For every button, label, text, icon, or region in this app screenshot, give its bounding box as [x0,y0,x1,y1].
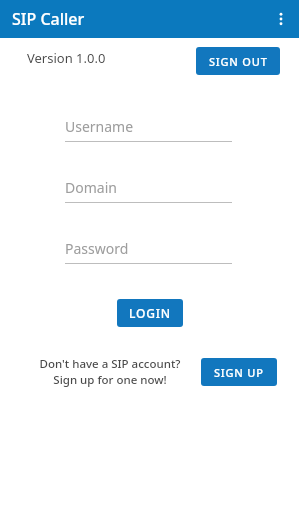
staticText: SIGN UP [214,365,264,380]
staticText: Domain [65,178,117,197]
staticText: Don't have a SIP account? Sign up for on… [28,356,192,387]
button[interactable]: SIGN OUT [196,47,280,75]
staticText: LOGIN [129,305,171,321]
staticText: Version 1.0.0 [27,49,106,67]
button[interactable]: SIGN UP [201,358,277,386]
button[interactable]: Password [65,239,232,264]
staticText: Username [65,117,134,136]
staticText: SIP Caller [12,8,85,30]
button[interactable]: Domain [65,178,232,203]
button[interactable]: LOGIN [117,299,183,327]
button[interactable]: More options [266,4,296,34]
button[interactable]: Username [65,117,232,142]
staticText: SIGN OUT [209,54,268,69]
staticText: Password [65,239,129,258]
